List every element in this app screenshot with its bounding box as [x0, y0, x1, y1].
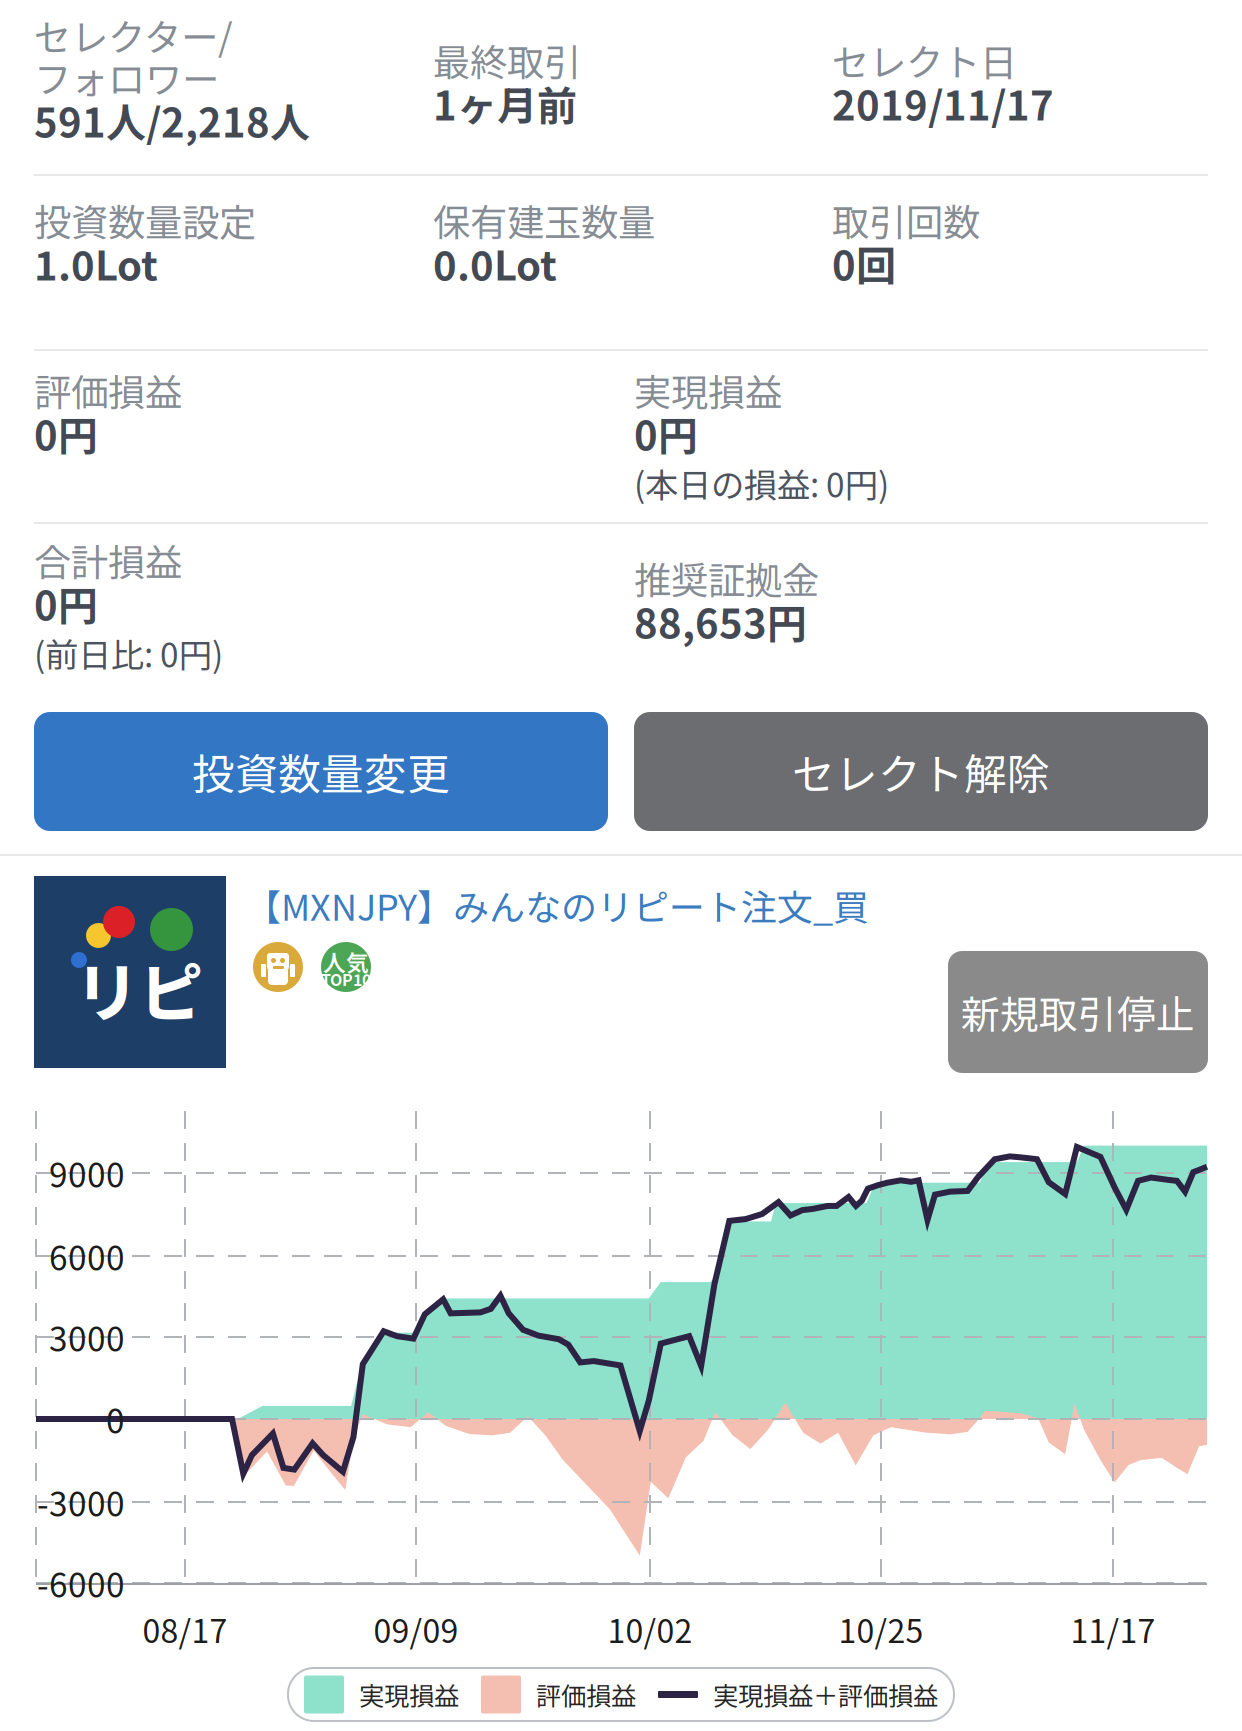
staticText: 9000 [49, 1149, 125, 1197]
staticText: セレクター/ [34, 8, 233, 62]
staticText: -6000 [37, 1559, 125, 1607]
staticText: 最終取引 [433, 33, 581, 87]
staticText: 新規取引停止 [961, 984, 1195, 1040]
staticText: 0.0Lot [433, 234, 557, 292]
staticText: 【MXNJPY】みんなのリピート注文_買 [245, 879, 869, 931]
staticText: 評価損益 [536, 1676, 636, 1713]
staticText: 実現損益 [359, 1676, 459, 1713]
staticText: (前日比: 0円) [34, 629, 223, 677]
staticText: 実現損益 [634, 363, 782, 417]
staticText: 2019/11/17 [832, 74, 1054, 132]
staticText: 保有建玉数量 [433, 193, 655, 247]
staticText: 88,653円 [634, 592, 807, 650]
staticText: -3000 [37, 1478, 125, 1526]
staticText: 11/17 [1070, 1606, 1155, 1652]
staticText: 1ヶ月前 [433, 74, 577, 132]
staticText: セレクト日 [832, 33, 1017, 87]
staticText: 取引回数 [832, 193, 980, 247]
staticText: 591人/2,218人 [34, 91, 310, 149]
button[interactable]: 投資数量変更 [34, 712, 608, 831]
staticText: 08/17 [142, 1606, 227, 1652]
staticText: 合計損益 [34, 533, 182, 587]
staticText: 人気 [323, 945, 369, 978]
staticText: 3000 [49, 1313, 125, 1361]
staticText: (本日の損益: 0円) [634, 459, 889, 507]
staticText: 0回 [832, 234, 896, 292]
staticText: 1.0Lot [34, 234, 158, 292]
staticText: 投資数量設定 [34, 193, 256, 247]
button[interactable]: 新規取引停止 [948, 951, 1208, 1073]
staticText: 0円 [34, 404, 98, 462]
staticText: 09/09 [373, 1606, 458, 1652]
staticText: 実現損益＋評価損益 [713, 1676, 938, 1713]
staticText: 評価損益 [34, 363, 182, 417]
staticText: 0円 [634, 404, 698, 462]
button[interactable]: セレクト解除 [634, 712, 1208, 831]
staticText: フォロワー [34, 50, 219, 104]
staticText: 10/25 [838, 1606, 923, 1652]
staticText: セレクト解除 [792, 741, 1050, 802]
staticText: 0 [106, 1395, 125, 1443]
staticText: 10/02 [607, 1606, 692, 1652]
staticText: 投資数量変更 [192, 741, 450, 802]
staticText: 0円 [34, 574, 98, 632]
staticText: 推奨証拠金 [634, 551, 819, 605]
staticText: TOP10 [321, 967, 371, 991]
staticText: リピ [75, 942, 203, 1035]
staticText: 6000 [49, 1232, 125, 1280]
